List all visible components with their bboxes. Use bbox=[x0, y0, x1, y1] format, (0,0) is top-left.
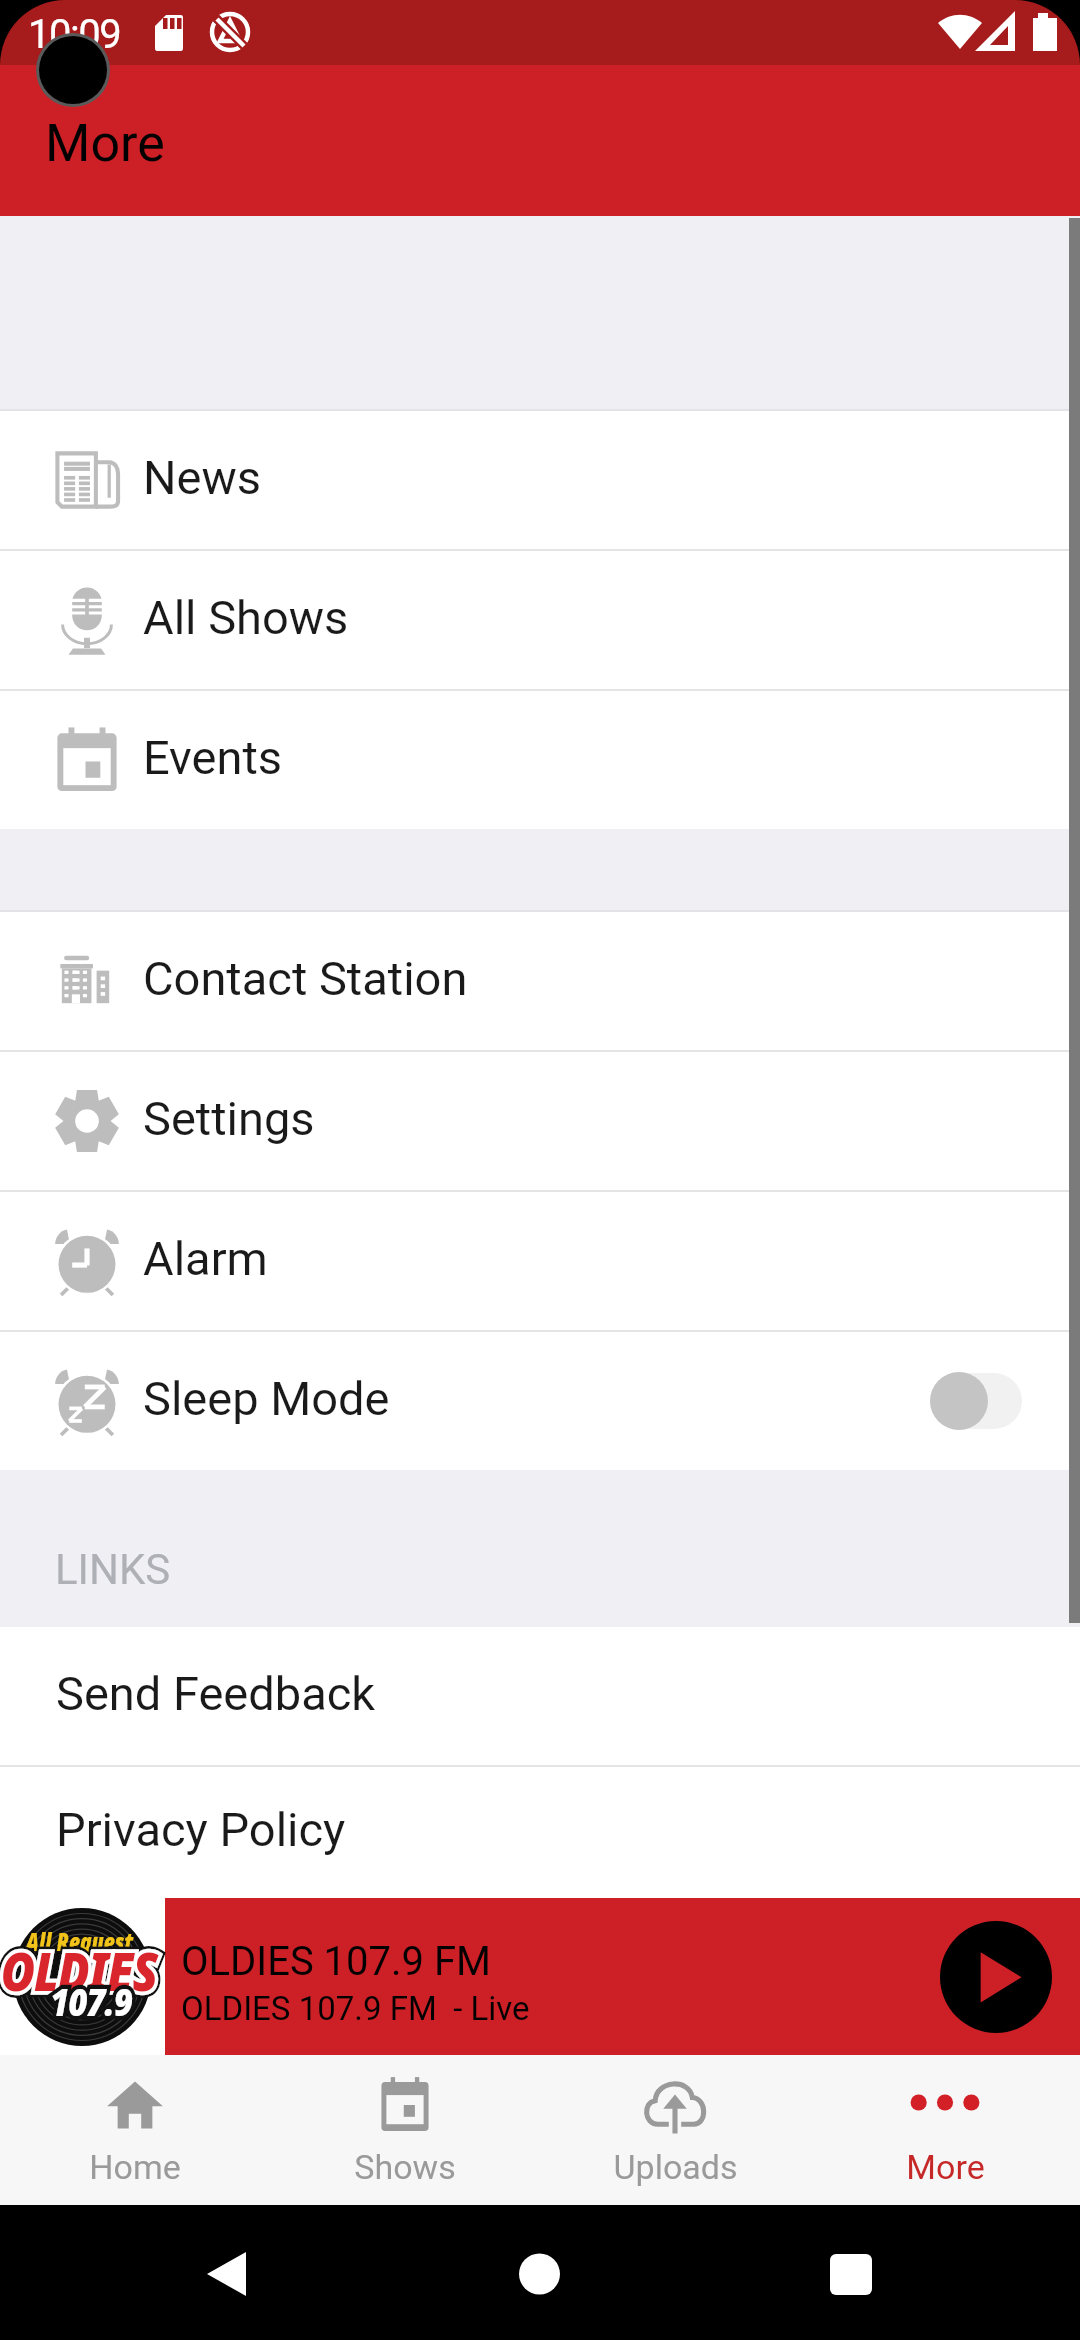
button[interactable]: More bbox=[810, 2055, 1080, 2205]
staticText: OLDIES bbox=[1, 1934, 158, 2006]
button[interactable]: Recent apps bbox=[805, 2239, 897, 2319]
staticText: LINKS bbox=[55, 1545, 171, 1594]
button[interactable]: All Shows bbox=[0, 551, 1080, 689]
button[interactable]: Privacy Policy bbox=[0, 1767, 1080, 1898]
staticText: OLDIES 107.9 FM bbox=[181, 1938, 492, 1985]
button[interactable]: News bbox=[0, 411, 1080, 549]
button[interactable]: Back bbox=[180, 2239, 272, 2319]
staticText: 10:09 bbox=[28, 11, 121, 58]
button[interactable]: Play bbox=[940, 1921, 1052, 2033]
button[interactable]: Sleep Mode bbox=[0, 1332, 1080, 1470]
button[interactable]: Home bbox=[494, 2239, 586, 2319]
staticText: Privacy Policy bbox=[56, 1802, 346, 1857]
button[interactable]: Shows bbox=[270, 2055, 540, 2205]
staticText: More bbox=[45, 113, 165, 174]
staticText: Alarm bbox=[143, 1231, 268, 1286]
staticText: News bbox=[143, 450, 262, 505]
staticText: All Shows bbox=[143, 590, 349, 645]
staticText: Settings bbox=[143, 1091, 315, 1146]
staticText: Uploads bbox=[613, 2147, 738, 2187]
button[interactable]: Send Feedback bbox=[0, 1627, 1080, 1765]
button[interactable]: Events bbox=[0, 691, 1080, 829]
button[interactable] bbox=[165, 1898, 1080, 2055]
staticText: 107.9 bbox=[50, 1975, 132, 2027]
staticText: OLDIES bbox=[1, 1934, 158, 2006]
staticText: 107.9 bbox=[50, 1975, 132, 2027]
button[interactable]: Alarm bbox=[0, 1192, 1080, 1330]
button[interactable]: Settings bbox=[0, 1052, 1080, 1190]
staticText: OLDIES 107.9 FM - Live bbox=[181, 1989, 530, 2028]
staticText: All Request bbox=[26, 1925, 134, 1958]
button[interactable]: Contact Station bbox=[0, 912, 1080, 1050]
button[interactable]: Home bbox=[0, 2055, 270, 2205]
staticText: Events bbox=[143, 730, 283, 785]
staticText: Contact Station bbox=[143, 951, 468, 1006]
staticText: Sleep Mode bbox=[143, 1371, 390, 1426]
staticText: OLDIES bbox=[1, 1934, 158, 2006]
staticText: More bbox=[906, 2147, 985, 2187]
button[interactable]: Uploads bbox=[540, 2055, 810, 2205]
staticText: Send Feedback bbox=[56, 1666, 376, 1721]
staticText: Home bbox=[89, 2147, 181, 2187]
staticText: Shows bbox=[354, 2147, 456, 2187]
